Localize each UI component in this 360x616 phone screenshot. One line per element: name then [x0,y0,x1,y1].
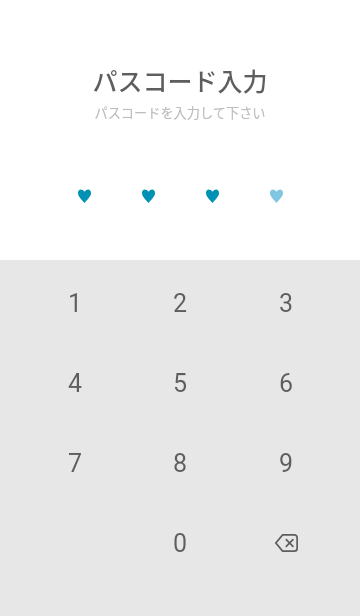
staticText: 9 [279,449,294,478]
staticText: 0 [173,529,188,558]
staticText: 1 [68,289,83,318]
button[interactable]: 8 [127,423,233,503]
staticText: 5 [173,369,188,398]
other: Backspace [264,521,308,565]
staticText: パスコードを入力して下さい [94,103,266,122]
staticText: 3 [279,289,294,318]
button[interactable]: 9 [233,423,339,503]
button[interactable]: 2 [127,263,233,343]
button[interactable]: 7 [22,423,128,503]
button[interactable]: 6 [233,343,339,423]
staticText: 2 [173,289,188,318]
button[interactable]: 1 [22,263,128,343]
staticText: 6 [279,369,294,398]
button[interactable]: 5 [127,343,233,423]
staticText: 7 [68,449,83,478]
staticText: パスコード入力 [92,62,268,98]
button[interactable]: 4 [22,343,128,423]
button[interactable]: 3 [233,263,339,343]
button[interactable]: 0 [127,503,233,583]
button[interactable]: Backspace [233,503,339,583]
staticText: 4 [68,369,83,398]
staticText: 8 [173,449,188,478]
